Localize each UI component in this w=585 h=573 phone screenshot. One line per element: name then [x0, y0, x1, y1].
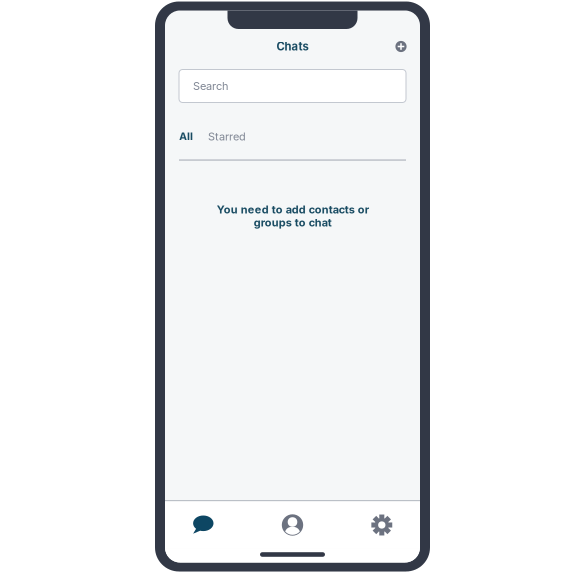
button[interactable]: Starred	[193, 127, 246, 145]
button[interactable]: Contacts	[250, 501, 335, 548]
staticText: Search	[193, 79, 228, 93]
staticText: Chats	[276, 40, 308, 53]
staticText: You need to add contacts or groups to ch…	[216, 203, 368, 229]
staticText: All	[179, 130, 193, 143]
staticText: Starred	[208, 130, 246, 143]
button[interactable]: Chats	[165, 501, 250, 548]
button[interactable]: Search	[179, 69, 406, 102]
button[interactable]: Settings	[335, 501, 420, 548]
button[interactable]: All	[179, 127, 193, 145]
button[interactable]: New chat	[388, 33, 414, 59]
